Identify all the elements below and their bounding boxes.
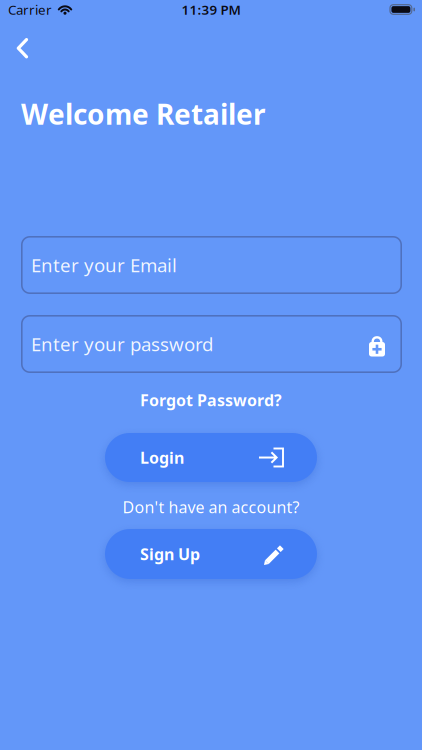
staticText: Welcome Retailer (21, 95, 266, 133)
staticText: Forgot Password? (140, 389, 282, 411)
staticText: Sign Up (140, 543, 200, 565)
button[interactable]: Enter your password (0, 315, 422, 373)
button[interactable]: Forgot Password? (140, 389, 282, 411)
staticText: Carrier (8, 1, 52, 18)
staticText: Enter your password (31, 332, 213, 356)
staticText: 11:39 PM (181, 1, 240, 18)
button[interactable]: Sign Up (105, 529, 317, 579)
staticText: Login (140, 447, 184, 468)
staticText: Don't have an account? (122, 496, 299, 518)
staticText: Enter your Email (31, 253, 177, 277)
button[interactable]: Back (0, 38, 40, 58)
button[interactable]: Enter your Email (0, 236, 422, 294)
button[interactable]: Login (105, 433, 317, 482)
